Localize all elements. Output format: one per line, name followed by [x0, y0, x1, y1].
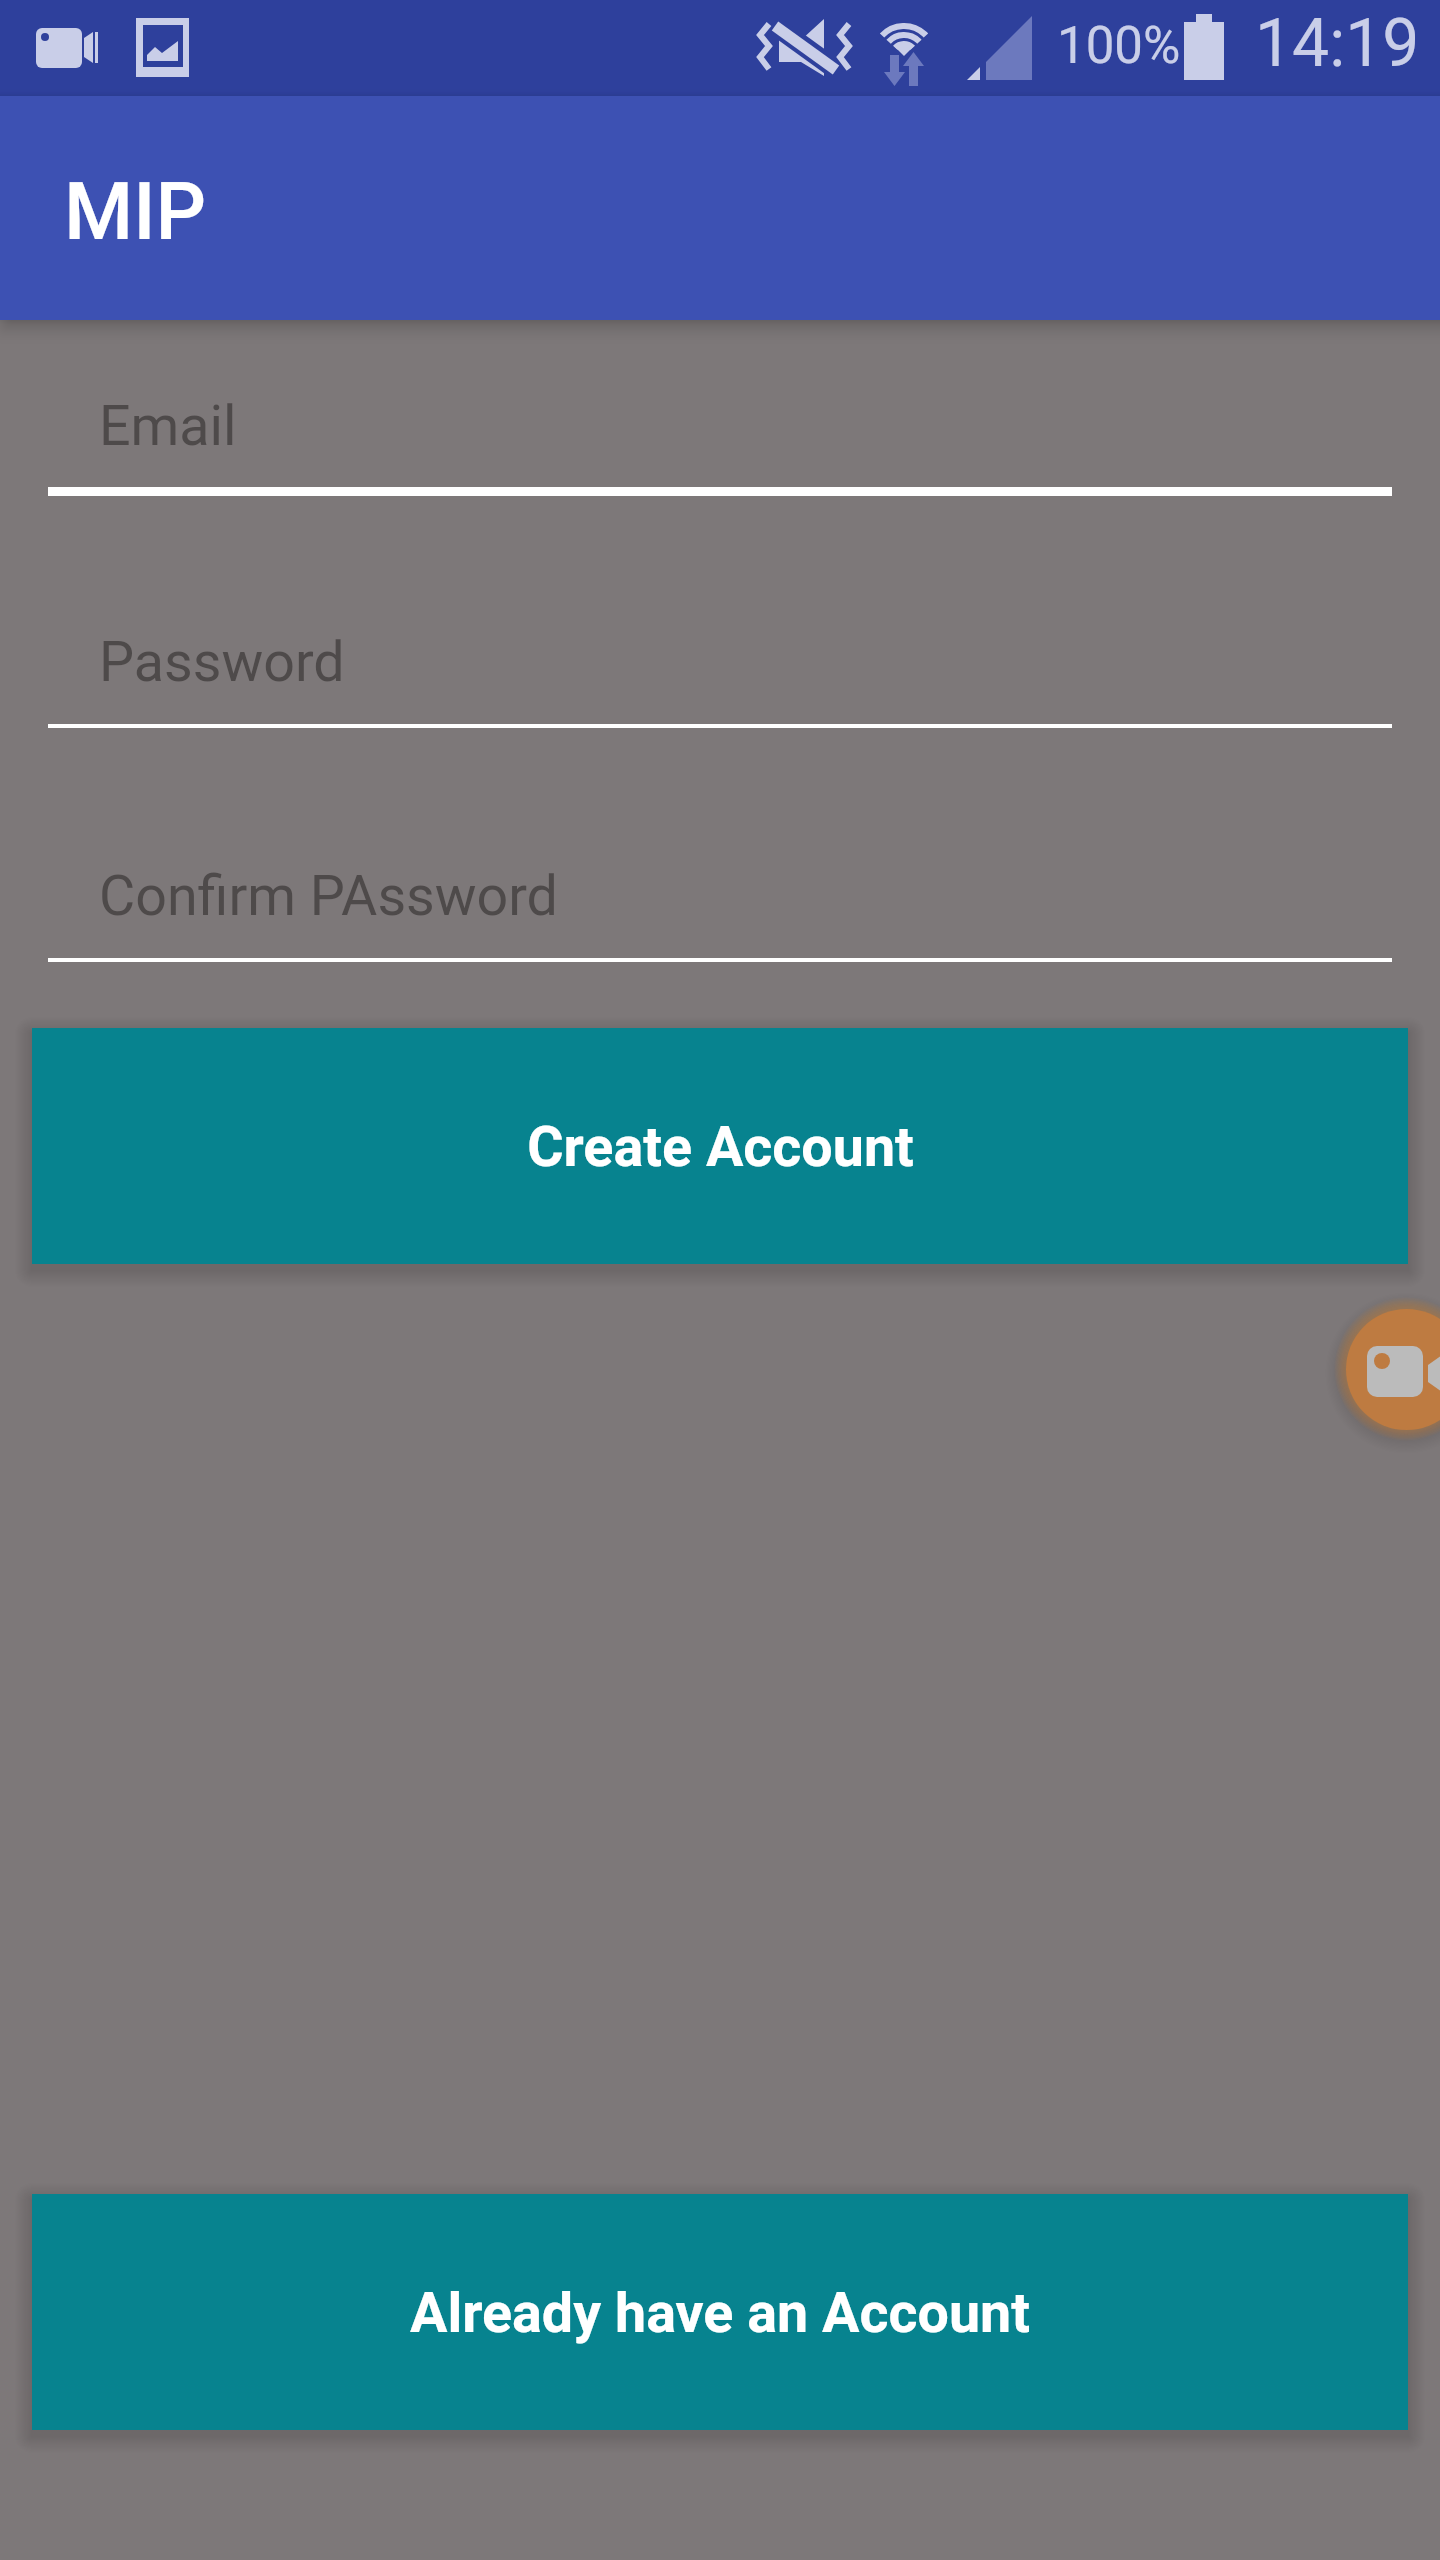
staticText: Password — [99, 629, 345, 694]
button[interactable]: Confirm PAssword — [48, 841, 1392, 962]
staticText: Email — [99, 393, 237, 458]
staticText: 100% — [1057, 16, 1181, 76]
staticText: Confirm PAssword — [99, 863, 558, 928]
button[interactable]: Password — [48, 607, 1392, 728]
button[interactable]: Email — [48, 371, 1392, 496]
staticText: MIP — [64, 166, 206, 259]
staticText: Already have an Account — [410, 2280, 1030, 2345]
button[interactable]: Create Account — [32, 1028, 1408, 1264]
button[interactable]: Start video call — [1346, 1309, 1440, 1430]
staticText: 14:19 — [1255, 5, 1420, 82]
button[interactable]: Already have an Account — [32, 2194, 1408, 2430]
staticText: Create Account — [527, 1114, 914, 1179]
